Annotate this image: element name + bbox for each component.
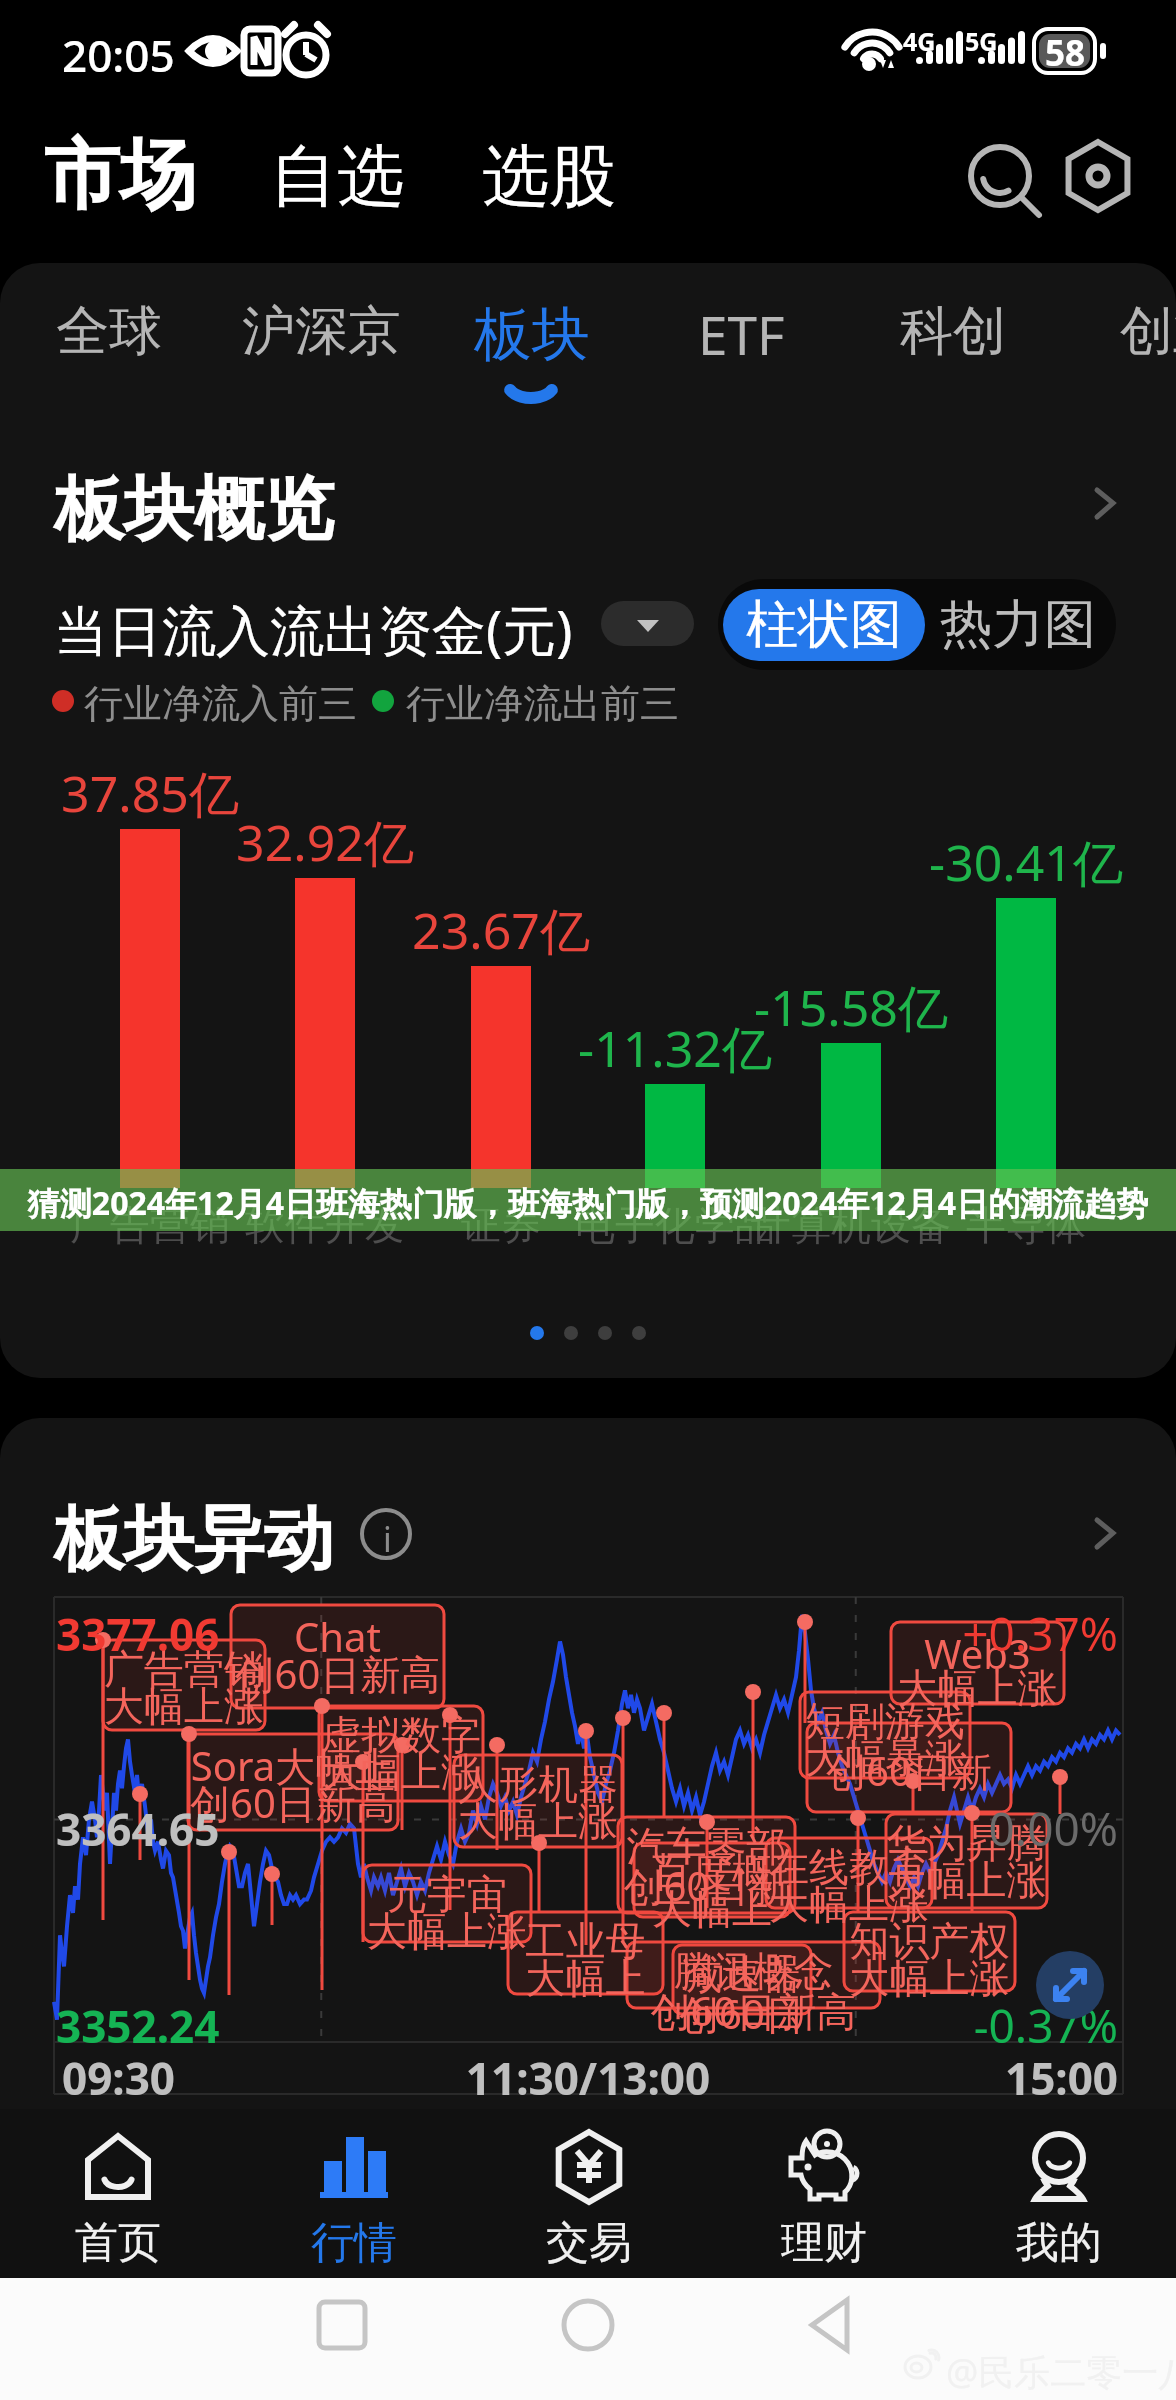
button[interactable]: 我的 [941,2109,1176,2278]
staticText: -11.32亿 [535,1014,815,1082]
button[interactable]: 板块概览 more [1085,482,1133,530]
button[interactable]: 科创 [874,272,1032,391]
staticText: 行业净流出前三 [406,679,679,728]
staticText: 短剧游戏 [800,1696,970,1746]
staticText: 大幅上涨 [454,1796,622,1846]
staticText: 11:30/13:00 [400,2048,776,2108]
staticText: 减速器 [673,1949,811,1999]
button[interactable]: 柱状图 [723,589,925,661]
staticText: +0.37% [860,1602,1118,1665]
staticText: 自选 [270,134,404,218]
button[interactable]: 首页 [0,2109,236,2278]
staticText: 大幅上涨 [891,1663,1064,1713]
button[interactable]: Choose metric [601,601,694,646]
staticText: 全球 [56,298,162,365]
staticText: 猜测2024年12月4日班海热门版，班海热门版，预测2024年12月4日的潮流趋… [0,1181,1176,1225]
button[interactable]: 创业 [1094,272,1176,391]
button[interactable]: 全球 [30,272,188,391]
button[interactable]: 沪深京 [216,272,427,391]
staticText: 选股 [482,134,616,218]
staticText: 大幅上涨 [508,1953,663,2003]
staticText: 大幅上涨 [886,1855,1047,1905]
staticText: 计算机设备 [711,1200,991,1250]
button[interactable]: 行情 [236,2109,471,2278]
staticText: 广告营销 [10,1200,290,1250]
staticText: 创业 [1120,298,1176,365]
staticText: 创60日新高 [618,1858,795,1913]
staticText: Sora大幅上涨 [188,1738,398,1793]
staticText: 58 [1042,29,1088,77]
staticText: 沪深京 [242,298,401,365]
staticText: 华为昇腾 [886,1818,1047,1868]
staticText: 行业净流入前三 [84,679,357,728]
staticText: 37.85亿 [10,759,290,827]
staticText: 大幅暴涨 [800,1733,970,1783]
staticText: 热力图 [940,592,1096,658]
button[interactable]: Fullscreen [1036,1951,1104,2019]
staticText: 元宇宙 [363,1869,531,1919]
staticText: 3364.65 [56,1799,220,1859]
staticText: 创60日新高 [673,1986,811,2041]
staticText: 人形机器 [454,1759,622,1809]
staticText: 交易 [546,2216,632,2270]
staticText: 创60日新高 [807,1743,1011,1798]
button[interactable]: 板块 [448,272,616,397]
staticText: @民乐二零一八 [946,2347,1176,2396]
staticText: 广告营销 [103,1644,265,1694]
staticText: 0.00% [860,1797,1118,1860]
staticText: 20:05 [62,25,175,85]
staticText: 证券 [361,1200,641,1250]
button[interactable]: 板块异动 more [1085,1512,1133,1560]
staticText: -15.58亿 [711,973,991,1041]
staticText: 大幅上涨 [363,1906,531,1956]
staticText: 半导体 [886,1200,1166,1250]
button[interactable]: 自选 [270,134,404,218]
staticText: 板块 [474,298,590,371]
staticText: 电子化学品 [535,1200,815,1250]
staticText: 知识产权 [844,1916,1015,1966]
button[interactable]: Search [966,142,1050,226]
button[interactable]: 热力图 [925,589,1111,661]
staticText: 软件开发 [185,1200,465,1250]
button[interactable]: Settings [1064,142,1144,222]
staticText: 创60日新高 [188,1775,398,1830]
staticText: 市场 [44,128,196,224]
staticText: 大幅上涨 [319,1747,483,1797]
staticText: 15:00 [860,2048,1118,2108]
staticText: i [383,1516,392,1562]
staticText: 大幅上涨 [844,1953,1015,2003]
staticText: 大幅上涨 [766,1879,932,1929]
staticText: 行情 [311,2216,397,2270]
button[interactable]: ETF [672,272,811,396]
staticText: 工业母机 [508,1916,663,1966]
button[interactable]: 交易 [471,2109,706,2278]
staticText: 理财 [781,2216,867,2270]
staticText: 科创 [900,298,1006,365]
staticText: 我的 [1016,2216,1102,2270]
staticText: 创60日新高 [231,1646,444,1701]
staticText: -30.41亿 [886,828,1166,896]
staticText: 3377.06 [56,1604,220,1664]
staticText: 当日流入流出资金(元) [54,592,573,666]
staticText: 腾讯概念 [627,1946,880,1996]
staticText: Chat [231,1609,444,1663]
staticText: 板块异动 [54,1496,334,1584]
staticText: 百度概念 [634,1847,790,1897]
staticText: ETF [698,298,785,370]
staticText: 5G [965,24,998,58]
staticText: 32.92亿 [185,808,465,876]
button[interactable]: 选股 [482,134,616,218]
staticText: 在线教育 [766,1842,932,1892]
staticText: 大幅上涨 [103,1681,265,1731]
staticText: 3352.24 [56,1996,220,2056]
staticText: 23.67亿 [361,896,641,964]
button[interactable]: 市场 [44,128,196,224]
staticText: Web3 [891,1626,1064,1680]
staticText: 创60日新高 [627,1983,880,2038]
staticText: 板块概览 [54,466,334,554]
staticText: -0.37% [860,1994,1118,2057]
button[interactable]: 理财 [706,2109,941,2278]
staticText: 首页 [75,2216,161,2270]
staticText: 汽车零部 [618,1821,795,1871]
staticText: 大幅上涨 [634,1884,790,1934]
